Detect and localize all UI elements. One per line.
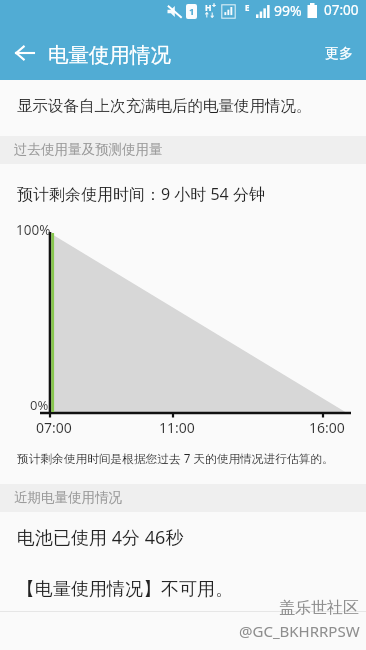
staticText: @GC_BKHRRPSW <box>239 621 360 641</box>
staticText: + <box>212 1 217 11</box>
staticText: 盖乐世社区 <box>279 598 359 618</box>
staticText: 07:00 <box>324 1 359 19</box>
staticText: 99% <box>274 1 302 20</box>
staticText: 预计剩余使用时间是根据您过去 7 天的使用情况进行估算的。 <box>17 450 334 466</box>
button[interactable]: 【电量使用情况】不可用。 <box>0 568 366 610</box>
staticText: 电量使用情况 <box>48 42 171 68</box>
staticText: 过去使用量及预测使用量 <box>14 141 163 158</box>
staticText: 电池已使用 4分 46秒 <box>17 525 184 550</box>
staticText: H <box>205 2 212 14</box>
staticText: 显示设备自上次充满电后的电量使用情况。 <box>17 96 312 116</box>
staticText: 11:00 <box>159 418 195 437</box>
staticText: 07:00 <box>36 418 72 437</box>
button[interactable]: Back <box>4 33 44 73</box>
staticText: 16:00 <box>309 418 345 437</box>
button[interactable]: 更多 <box>313 38 365 70</box>
staticText: 100% <box>16 221 51 239</box>
staticText: 更多 <box>325 45 353 63</box>
button[interactable]: 电池已使用 4分 46秒 <box>0 516 366 558</box>
staticText: 近期电量使用情况 <box>14 489 122 506</box>
staticText: 1 <box>189 5 195 18</box>
staticText: 预计剩余使用时间：9 小时 54 分钟 <box>17 183 265 205</box>
staticText: 【电量使用情况】不可用。 <box>17 578 233 601</box>
staticText: 0% <box>30 396 49 414</box>
staticText: E <box>245 2 250 13</box>
